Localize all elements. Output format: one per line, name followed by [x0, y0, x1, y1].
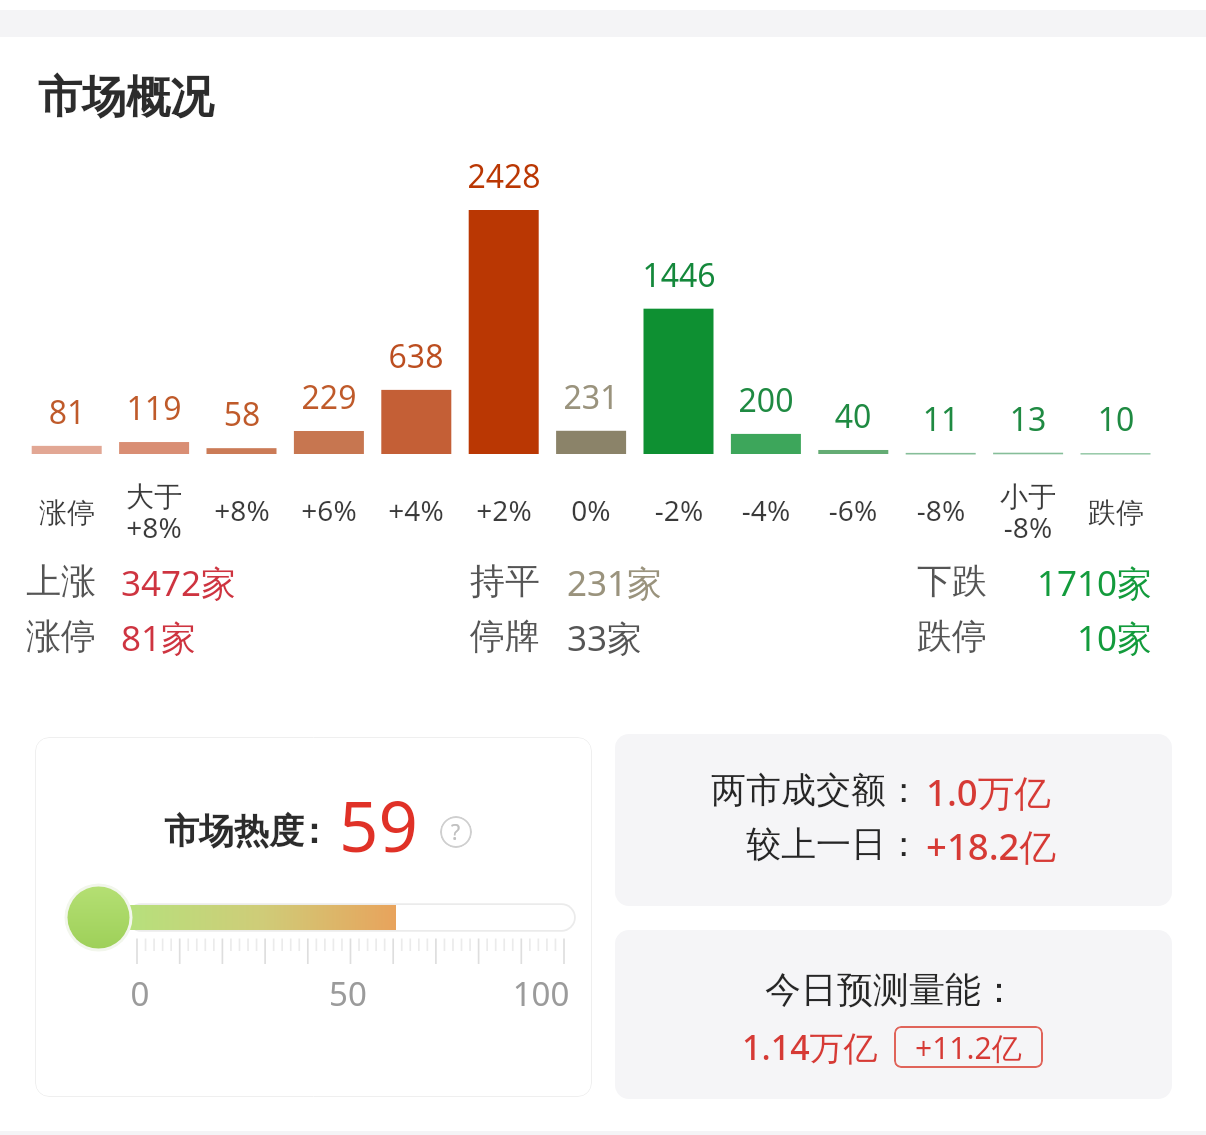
staticText: +8% — [122, 491, 362, 529]
staticText: 停牌 — [470, 614, 540, 658]
staticText: 200 — [646, 378, 886, 422]
staticText: +2% — [384, 491, 624, 529]
staticText: -4% — [646, 491, 886, 529]
staticText: 81家 — [121, 614, 197, 662]
button[interactable]: 两市成交额： — [615, 734, 1172, 906]
staticText: +11.2亿 — [915, 1027, 1022, 1068]
staticText: 涨停 — [0, 495, 187, 530]
staticText: 较上一日： — [615, 822, 921, 866]
staticText: +4% — [296, 491, 536, 529]
staticText: 涨停 — [26, 614, 96, 658]
staticText: +6% — [209, 491, 449, 529]
staticText: 持平 — [470, 559, 540, 603]
staticText: ? — [451, 818, 461, 847]
staticText: 2428 — [384, 154, 624, 198]
staticText: -8% — [908, 508, 1148, 546]
staticText: -6% — [733, 491, 973, 529]
button[interactable]: 说明 — [440, 816, 472, 848]
staticText: 638 — [296, 334, 536, 378]
staticText: 今日预测量能： — [641, 967, 1141, 1012]
staticText: 两市成交额： — [615, 768, 921, 812]
staticText: 33家 — [567, 614, 643, 662]
staticText: 0 — [35, 971, 260, 1016]
staticText: 10家 — [792, 614, 1152, 662]
staticText: 大于 — [34, 479, 274, 514]
staticText: 229 — [209, 375, 449, 419]
staticText: 231家 — [567, 559, 663, 607]
staticText: 40 — [733, 394, 973, 438]
button[interactable]: +11.2亿 — [894, 1026, 1043, 1068]
staticText: 231 — [471, 375, 711, 419]
staticText: 10 — [996, 397, 1206, 441]
staticText: 81 — [0, 390, 187, 434]
staticText: 下跌 — [917, 559, 987, 603]
staticText: +8% — [34, 508, 274, 546]
staticText: 3472家 — [121, 559, 237, 607]
staticText: 1.0万亿 — [926, 767, 1051, 817]
staticText: 市场热度 — [164, 809, 304, 853]
staticText: 1446 — [559, 253, 799, 297]
staticText: 100 — [421, 971, 592, 1016]
button[interactable]: 今日预测量能： — [615, 930, 1172, 1099]
staticText: 13 — [908, 397, 1148, 441]
staticText: 59 — [339, 778, 418, 872]
staticText: 小于 — [908, 479, 1148, 514]
staticText: 58 — [122, 392, 362, 436]
staticText: 跌停 — [917, 614, 987, 658]
staticText: 119 — [34, 386, 274, 430]
staticText: 1710家 — [792, 559, 1152, 607]
staticText: ： — [296, 809, 331, 853]
staticText: -2% — [559, 491, 799, 529]
staticText: 市场概况 — [38, 70, 214, 125]
staticText: 50 — [228, 971, 468, 1016]
staticText: 跌停 — [996, 495, 1206, 530]
staticText: 1.14万亿 — [742, 1024, 878, 1070]
staticText: -8% — [821, 491, 1061, 529]
staticText: +18.2亿 — [926, 821, 1056, 871]
button[interactable]: 市场热度 — [35, 737, 592, 1097]
staticText: 11 — [821, 397, 1061, 441]
staticText: 0% — [471, 491, 711, 529]
staticText: 上涨 — [26, 559, 96, 603]
